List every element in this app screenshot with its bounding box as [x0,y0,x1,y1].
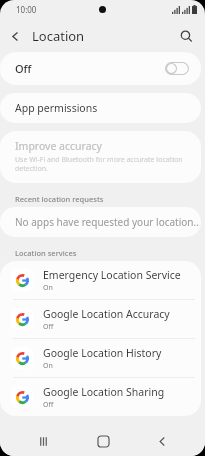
staticText: Off [43,322,54,332]
staticText: Google Location Accuracy [43,307,170,321]
staticText: On [43,361,53,371]
staticText: Off [43,400,54,410]
staticText: Location [32,27,85,45]
button[interactable]: Google Location History [0,339,201,377]
staticText: Google Location Sharing [43,385,165,399]
button[interactable]: Location toggle [165,62,189,75]
button[interactable]: Improve accuracy [0,131,201,183]
staticText: App permissions [15,101,98,115]
staticText: Google Location History [43,346,162,360]
staticText: No apps have requested your location.. [15,215,199,229]
staticText: Location services [15,248,77,258]
staticText: 10:00 [16,4,37,15]
button[interactable]: Emergency Location Service [0,261,201,299]
staticText: Off [15,61,165,76]
staticText: On [43,283,53,293]
staticText: Use Wi-Fi and Bluetooth for more accurat… [15,155,183,173]
staticText: Recent location requests [15,194,104,204]
button[interactable]: Google Location Accuracy [0,300,201,338]
button[interactable]: Search [171,21,201,51]
button[interactable]: Back [0,21,30,51]
staticText: Emergency Location Service [43,268,181,282]
button[interactable]: App permissions [0,93,201,123]
button[interactable]: Back [145,426,179,456]
button[interactable]: Home [86,426,120,456]
staticText: Improve accuracy [15,139,102,153]
button[interactable]: Off [0,52,201,85]
button[interactable]: Google Location Sharing [0,378,201,416]
button[interactable]: Recents [26,426,60,456]
